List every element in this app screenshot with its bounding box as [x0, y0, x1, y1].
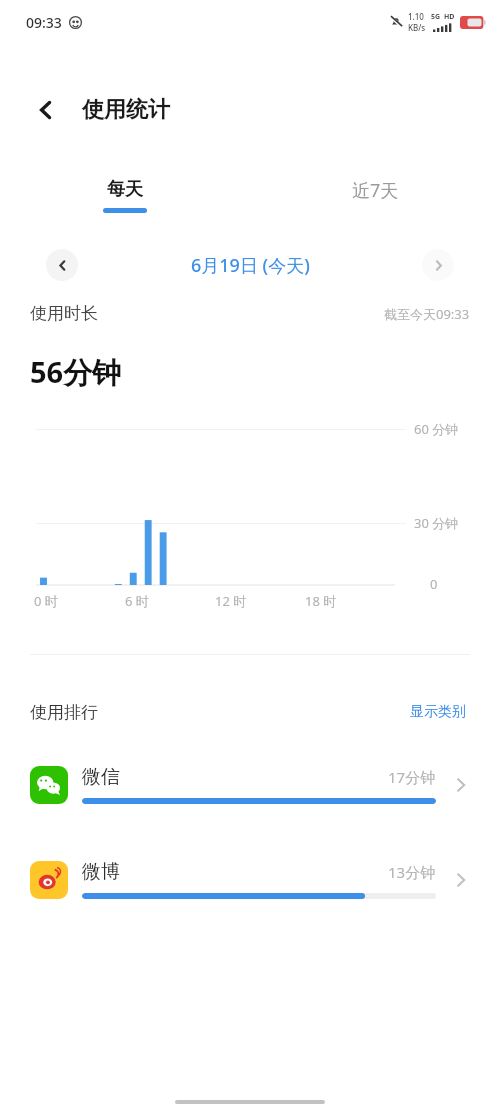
staticText: 13分钟 — [388, 862, 436, 882]
staticText: 17分钟 — [388, 767, 436, 787]
staticText: 近7天 — [352, 178, 399, 203]
button[interactable]: Next day — [422, 249, 454, 281]
staticText: 微信 — [82, 765, 120, 789]
button[interactable]: Previous day — [46, 249, 78, 281]
button[interactable]: 微信 — [0, 765, 500, 804]
staticText: 每天 — [107, 178, 143, 201]
button[interactable]: 显示类别 — [406, 699, 470, 725]
staticText: 使用时长 — [30, 303, 98, 324]
button[interactable]: 每天 — [85, 174, 165, 217]
staticText: KB/s — [408, 22, 426, 33]
staticText: 截至今天09:33 — [384, 305, 470, 323]
button[interactable]: Back — [26, 90, 66, 130]
button[interactable]: 微博 — [0, 860, 500, 899]
staticText: 60 分钟 — [414, 420, 459, 438]
staticText: 12 时 — [215, 592, 247, 610]
staticText: 09:33 — [26, 13, 62, 32]
staticText: 5G — [431, 12, 441, 22]
staticText: 1.10 — [408, 11, 424, 22]
staticText: 使用排行 — [30, 702, 98, 723]
staticText: 6 时 — [125, 592, 149, 610]
staticText: 微博 — [82, 860, 120, 884]
staticText: HD — [444, 12, 455, 22]
staticText: 18 时 — [305, 592, 337, 610]
staticText: 0 — [430, 575, 438, 593]
staticText: 0 时 — [34, 592, 58, 610]
staticText: 30 分钟 — [414, 514, 459, 532]
button[interactable]: 近7天 — [334, 174, 417, 219]
staticText: 使用统计 — [82, 96, 170, 124]
staticText: 显示类别 — [410, 703, 466, 721]
staticText: 6月19日 (今天) — [191, 253, 310, 278]
staticText: 56分钟 — [30, 352, 122, 392]
